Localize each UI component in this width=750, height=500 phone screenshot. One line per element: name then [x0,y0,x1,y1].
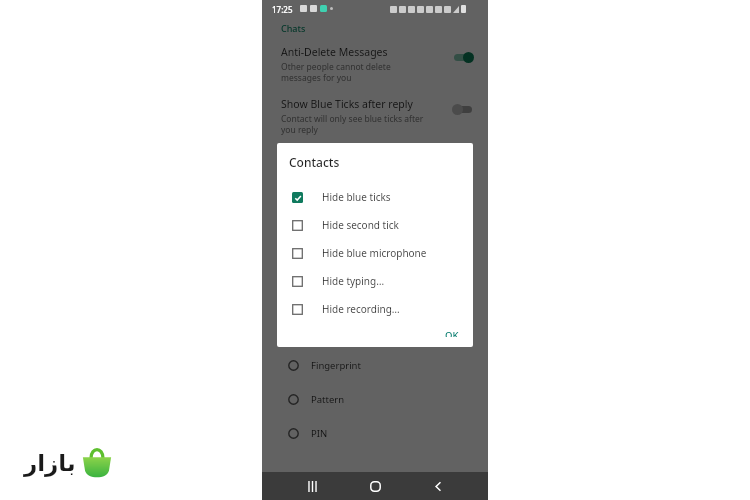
button[interactable]: Anti-Delete Messages [262,45,488,83]
staticText: بازار [24,450,76,477]
button[interactable]: Recent apps [299,473,325,499]
button[interactable]: Bazaar [8,428,128,498]
button[interactable]: Home [362,473,388,499]
button[interactable]: Fingerprint [262,359,488,372]
button[interactable]: Pattern [262,393,488,406]
staticText: Hide recording… [322,302,400,316]
staticText: Hide blue microphone [322,246,427,260]
staticText: Show Blue Ticks after reply [281,97,413,111]
staticText: Chats [281,22,306,34]
button[interactable]: Back [425,473,451,499]
staticText: Hide second tick [322,218,399,232]
staticText: Fingerprint [311,359,361,372]
staticText: 17:25 [272,4,293,15]
button[interactable]: Show Blue Ticks after reply [262,97,488,135]
staticText: Hide typing… [322,274,385,288]
staticText: Anti-Delete Messages [281,45,388,59]
button[interactable]: OK [431,323,473,347]
button[interactable]: Hide recording… [277,295,473,323]
staticText: OK [445,329,459,337]
staticText: Pattern [311,393,345,406]
staticText: Contacts [289,154,340,170]
staticText: Other people cannot delete messages for … [281,61,391,83]
button[interactable]: Hide typing… [277,267,473,295]
button[interactable]: PIN [262,427,488,440]
button[interactable]: Hide blue ticks [277,183,473,211]
staticText: Hide blue ticks [322,190,391,204]
staticText: Contact will only see blue ticks after y… [281,113,424,135]
button[interactable]: Hide blue microphone [277,239,473,267]
staticText: PIN [311,427,328,440]
button[interactable]: Hide second tick [277,211,473,239]
